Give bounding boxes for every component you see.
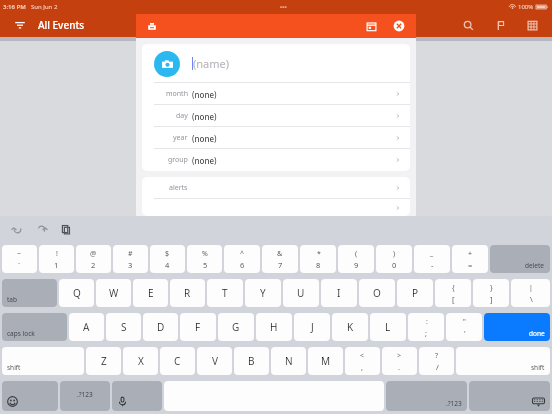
button[interactable]: Y [245,279,281,307]
staticText: group [168,155,188,165]
staticText: .?123 [77,390,93,399]
button[interactable]: " [446,313,482,341]
button[interactable]: Undo [8,220,26,238]
button[interactable]: C [160,347,195,375]
staticText: \ [530,294,533,304]
button[interactable]: * [300,245,336,273]
button[interactable]: S [106,313,141,341]
button[interactable]: K [332,313,368,341]
button[interactable]: .?123 [60,381,110,411]
button[interactable]: done [484,313,550,341]
button[interactable]: U [283,279,319,307]
button[interactable]: P [397,279,433,307]
button[interactable]: day [142,105,410,127]
button[interactable]: T [207,279,243,307]
staticText: X [138,354,144,368]
button[interactable]: Grid view [522,15,542,35]
staticText: 4 [165,260,170,270]
button[interactable]: ? [419,347,454,375]
staticText: U [297,286,305,300]
staticText: shift [531,363,545,372]
staticText: ` [18,260,21,270]
button[interactable]: tab [2,279,57,307]
button[interactable]: Emoji [2,381,58,411]
button[interactable]: Filter [10,15,30,35]
button[interactable]: W [96,279,131,307]
button[interactable]: R [170,279,205,307]
button[interactable]: group [142,149,410,171]
button[interactable]: Paste [56,220,74,238]
button[interactable]: Flag [490,15,510,35]
staticText: } [490,283,493,293]
button[interactable]: alerts [142,177,410,199]
button[interactable]: ^ [224,245,260,273]
button[interactable]: year [142,127,410,149]
button[interactable]: Event type [144,18,160,34]
button[interactable]: @ [76,245,111,273]
button[interactable]: H [256,313,292,341]
button[interactable]: Add photo [154,51,180,77]
button[interactable]: Close [390,17,408,35]
button[interactable]: $ [150,245,185,273]
button[interactable]: L [370,313,406,341]
button[interactable]: _ [414,245,450,273]
button[interactable]: O [359,279,395,307]
button[interactable]: X [123,347,158,375]
staticText: (none) [192,133,217,144]
button[interactable]: Z [86,347,121,375]
staticText: (none) [192,89,217,100]
button[interactable]: month [142,83,410,105]
button[interactable]: V [197,347,232,375]
staticText: Y [260,286,266,300]
staticText: F [195,320,201,334]
button[interactable]: : [408,313,444,341]
button[interactable]: B [234,347,269,375]
staticText: S [121,320,127,334]
button[interactable]: & [262,245,298,273]
button[interactable]: E [133,279,168,307]
button[interactable]: caps lock [2,313,67,341]
staticText: done [529,329,545,338]
button[interactable]: + [452,245,488,273]
button[interactable]: N [271,347,306,375]
button[interactable]: < [345,347,380,375]
staticText: / [436,362,439,372]
button[interactable]: Calendar [362,17,380,35]
button[interactable]: ! [39,245,74,273]
staticText: W [109,286,119,300]
staticText: E [148,286,154,300]
button[interactable]: # [113,245,148,273]
button[interactable]: shift [456,347,550,375]
button[interactable]: Redo [32,220,50,238]
button[interactable]: I [321,279,357,307]
button[interactable]: J [294,313,330,341]
button[interactable]: F [180,313,216,341]
button[interactable]: Q [59,279,94,307]
button[interactable]: { [435,279,471,307]
button[interactable]: D [143,313,178,341]
button[interactable]: Dictation [112,381,162,411]
staticText: 8 [316,260,321,270]
button[interactable]: ~ [2,245,37,273]
button[interactable]: } [473,279,509,307]
staticText: caps lock [7,329,35,338]
button[interactable]: delete [490,245,550,273]
button[interactable]: .?123 [386,381,467,411]
button[interactable]: (name) [192,44,410,83]
button[interactable]: % [187,245,222,273]
staticText: " [463,317,466,327]
button[interactable]: Search [458,15,478,35]
button[interactable]: | [511,279,550,307]
button[interactable]: ) [376,245,412,273]
button[interactable]: > [382,347,417,375]
button[interactable]: A [69,313,104,341]
staticText: (none) [192,155,217,166]
button[interactable]: G [218,313,254,341]
button[interactable]: shift [2,347,84,375]
button[interactable]: ( [338,245,374,273]
staticText: (name) [193,56,230,71]
button[interactable]: Hide keyboard [469,381,550,411]
button[interactable]: M [308,347,343,375]
